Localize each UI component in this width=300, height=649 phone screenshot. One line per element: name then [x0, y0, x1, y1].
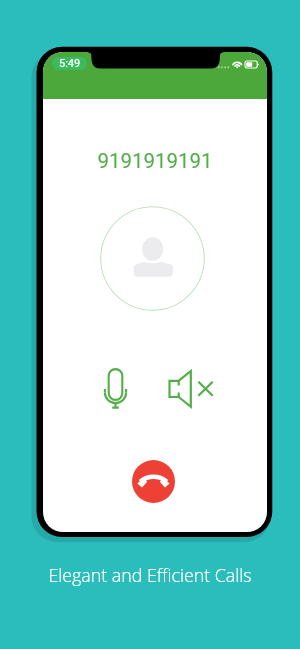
staticText: Elegant and Efficient Calls [48, 563, 252, 587]
staticText: 9191919191 [97, 149, 213, 173]
button[interactable]: Clock [52, 57, 87, 70]
button[interactable]: Caller avatar [100, 206, 205, 311]
button[interactable]: Mute microphone [103, 366, 128, 410]
button[interactable]: End call [132, 460, 175, 503]
staticText: 5:49 [59, 57, 81, 70]
button[interactable]: Speaker off [167, 368, 214, 411]
